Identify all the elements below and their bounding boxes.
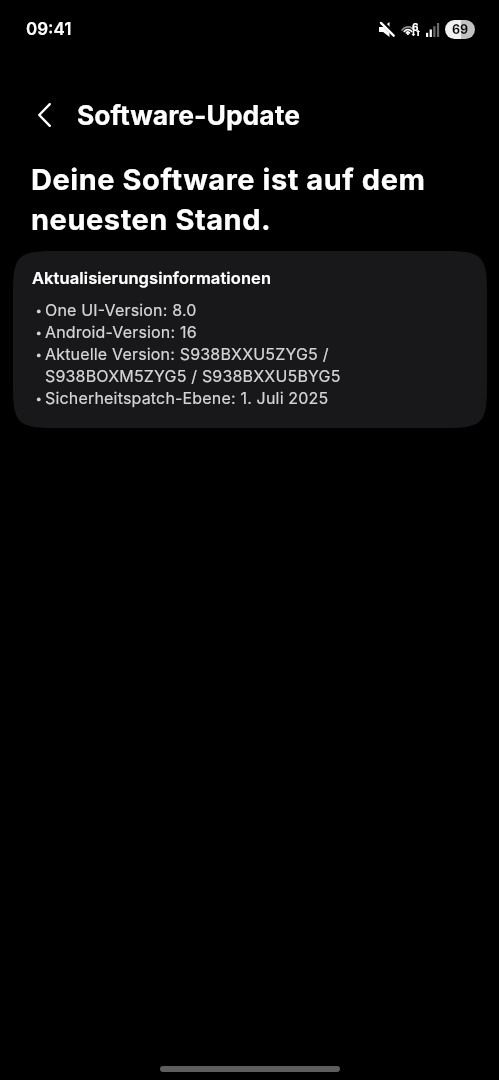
staticText: Aktuelle Version: S938BXXU5ZYG5 / S938BO… (45, 343, 341, 387)
staticText: Sicherheitspatch-Ebene: 1. Juli 2025 (45, 387, 329, 409)
staticText: Software-Update (77, 99, 300, 131)
staticText: Deine Software ist auf dem neuesten Stan… (31, 162, 467, 237)
staticText: 6 (412, 21, 419, 33)
staticText: 69 (452, 22, 469, 37)
staticText: One UI-Version: 8.0 (45, 299, 197, 321)
staticText: Android-Version: 16 (45, 321, 197, 343)
staticText: 09:41 (26, 19, 72, 40)
button[interactable]: Back (27, 98, 61, 132)
staticText: Aktualisierungsinformationen (32, 268, 272, 288)
